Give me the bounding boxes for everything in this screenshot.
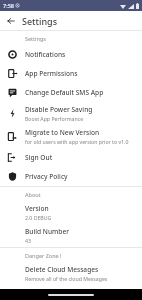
button[interactable]: Privacy Policy (0, 167, 142, 186)
button[interactable]: Migrate to New Version (0, 125, 142, 148)
staticText: Delete Cloud Messages (25, 265, 99, 274)
staticText: Change Default SMS App (25, 88, 104, 97)
button[interactable]: Version (0, 201, 142, 224)
button[interactable]: Back (4, 14, 18, 28)
button[interactable]: Delete Cloud Messages (0, 262, 142, 285)
staticText: Privacy Policy (25, 172, 68, 181)
button[interactable]: Build Number (0, 224, 142, 247)
staticText: Migrate to New Version (25, 128, 100, 137)
staticText: Disable Power Saving (25, 105, 93, 114)
staticText: 43 (25, 237, 31, 244)
staticText: App Permissions (25, 69, 78, 78)
staticText: 7:58 (3, 2, 14, 9)
staticText: Remove all of the cloud Messages Permane… (25, 275, 136, 282)
button[interactable]: Sign Out (0, 148, 142, 167)
staticText: Build Number (25, 227, 69, 236)
button[interactable]: Notifications (0, 45, 142, 64)
staticText: Danger Zone ! (25, 252, 62, 259)
staticText: Boost App Performance (25, 115, 84, 122)
staticText: for old users with app version prior to … (25, 138, 129, 145)
button[interactable]: Disable Power Saving (0, 102, 142, 125)
staticText: Version (25, 204, 49, 213)
staticText: Sign Out (25, 153, 53, 162)
staticText: 2.0 DEBUG (25, 214, 52, 221)
staticText: Settings (25, 35, 46, 42)
button[interactable]: Change Default SMS App (0, 83, 142, 102)
staticText: About (25, 191, 41, 198)
button[interactable]: App Permissions (0, 64, 142, 83)
staticText: Notifications (25, 50, 66, 59)
staticText: Settings (22, 15, 58, 27)
